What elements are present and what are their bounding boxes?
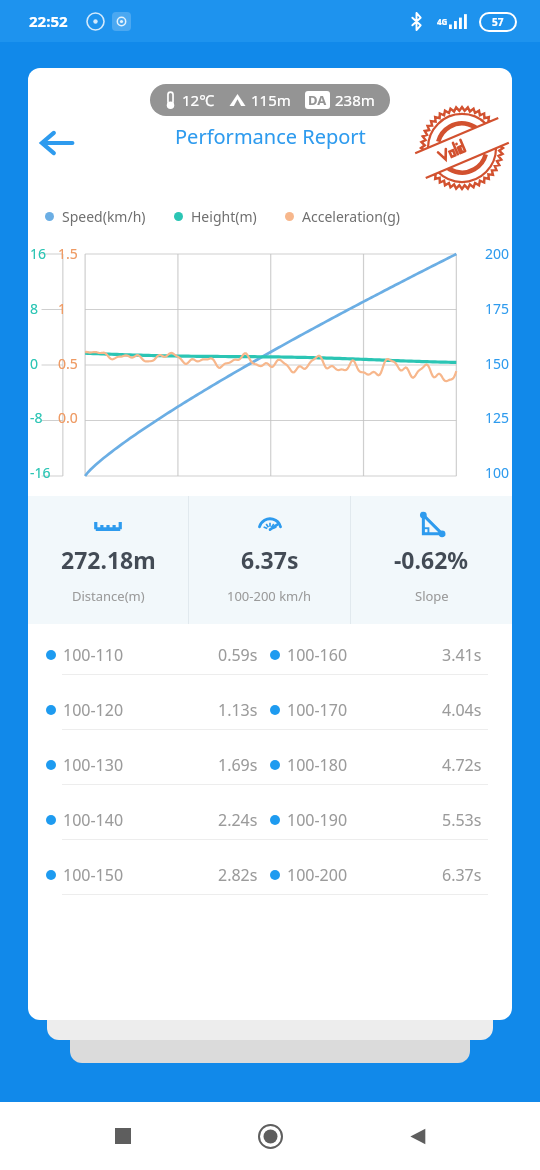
staticText: 22:52	[29, 11, 68, 31]
button[interactable]: 100-120	[46, 691, 494, 729]
button[interactable]: Back	[30, 116, 84, 170]
staticText: 238m	[335, 90, 375, 110]
staticText: 0.59s	[218, 644, 258, 666]
staticText: 3.41s	[442, 644, 482, 666]
staticText: DA	[308, 91, 327, 109]
staticText: Height(m)	[191, 207, 257, 226]
staticText: Slope	[415, 587, 449, 605]
staticText: 57	[492, 15, 504, 29]
staticText: 100-190	[287, 809, 348, 831]
staticText: Performance Report	[175, 123, 366, 150]
staticText: 272.18m	[61, 544, 156, 575]
staticText: 4.04s	[442, 699, 482, 721]
staticText: 100-110	[63, 644, 124, 666]
staticText: 100-170	[287, 699, 348, 721]
button[interactable]: 100-110	[46, 636, 494, 674]
staticText: Speed(km/h)	[62, 207, 146, 226]
staticText: 5.53s	[442, 809, 482, 831]
staticText: 100-200	[287, 864, 348, 886]
staticText: 100-200 km/h	[227, 587, 312, 605]
staticText: 100-160	[287, 644, 348, 666]
staticText: 6.37s	[442, 864, 482, 886]
staticText: 4G	[437, 16, 448, 27]
staticText: -16	[30, 463, 51, 482]
staticText: 125	[485, 408, 510, 427]
staticText: -0.62%	[394, 544, 469, 575]
button[interactable]: 12℃	[150, 84, 390, 116]
staticText: 200	[485, 244, 510, 263]
button[interactable]: 100-130	[46, 746, 494, 784]
button[interactable]: Home	[246, 1112, 294, 1160]
button[interactable]: Back	[393, 1112, 441, 1160]
staticText: 0.5	[58, 354, 78, 373]
button[interactable]: -0.62%	[351, 496, 512, 624]
other: Valid stamp	[418, 104, 506, 192]
staticText: Distance(m)	[72, 587, 145, 605]
staticText: 150	[485, 354, 510, 373]
staticText: 100-150	[63, 864, 124, 886]
button[interactable]: 272.18m	[28, 496, 188, 624]
staticText: 100-140	[63, 809, 124, 831]
staticText: 12℃	[182, 90, 215, 110]
staticText: 16	[30, 244, 47, 263]
button[interactable]: Recent apps	[99, 1112, 147, 1160]
staticText: 175	[485, 299, 510, 318]
staticText: 100	[485, 463, 510, 482]
staticText: 100-120	[63, 699, 124, 721]
button[interactable]: 100-140	[46, 801, 494, 839]
staticText: 8	[30, 299, 39, 318]
staticText: 2.82s	[218, 864, 258, 886]
staticText: 1.13s	[218, 699, 258, 721]
staticText: 4.72s	[442, 754, 482, 776]
staticText: -8	[30, 408, 43, 427]
staticText: 6.37s	[241, 544, 299, 575]
staticText: 115m	[251, 90, 291, 110]
staticText: 1	[58, 299, 67, 318]
staticText: Acceleration(g)	[302, 207, 400, 226]
staticText: 2.24s	[218, 809, 258, 831]
staticText: 1.69s	[218, 754, 258, 776]
staticText: 100-180	[287, 754, 348, 776]
button[interactable]: 6.37s	[189, 496, 350, 624]
staticText: 0.0	[58, 408, 78, 427]
staticText: 100-130	[63, 754, 124, 776]
staticText: 0	[30, 354, 39, 373]
button[interactable]: 100-150	[46, 856, 494, 894]
staticText: 1.5	[58, 244, 78, 263]
